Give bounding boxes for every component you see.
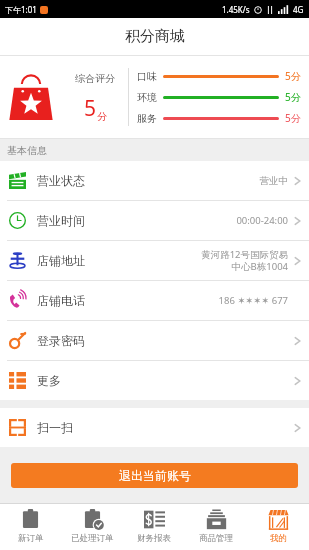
- button[interactable]: 营业状态: [0, 161, 309, 200]
- staticText: 店铺电话: [37, 293, 85, 308]
- button[interactable]: 已处理订单: [61, 504, 123, 550]
- staticText: 营业时间: [37, 213, 85, 228]
- button[interactable]: 财务报表: [123, 504, 185, 550]
- staticText: 基本信息: [7, 144, 47, 157]
- staticText: 下午1:01: [5, 4, 37, 15]
- staticText: 登录密码: [37, 333, 85, 348]
- staticText: 186 ✶✶✶✶ 677: [218, 294, 288, 307]
- staticText: 更多: [37, 373, 61, 388]
- button[interactable]: 营业时间: [0, 201, 309, 240]
- staticText: 营业中: [259, 175, 288, 187]
- staticText: 5: [84, 94, 97, 123]
- staticText: 营业状态: [37, 173, 85, 188]
- staticText: 分: [97, 110, 107, 123]
- button[interactable]: 扫一扫: [0, 408, 309, 447]
- staticText: 店铺地址: [37, 253, 85, 268]
- staticText: 环境: [137, 91, 157, 104]
- button[interactable]: 退出当前账号: [11, 463, 298, 488]
- staticText: 已处理订单: [71, 533, 114, 544]
- staticText: 扫一扫: [37, 420, 73, 435]
- staticText: 5分: [285, 111, 301, 125]
- staticText: 积分商城: [125, 27, 185, 46]
- staticText: 综合评分: [75, 72, 115, 85]
- button[interactable]: 更多: [0, 361, 309, 400]
- button[interactable]: 我的: [247, 504, 309, 550]
- staticText: 退出当前账号: [119, 468, 191, 483]
- staticText: 4G: [293, 4, 304, 15]
- staticText: 00:00-24:00: [236, 214, 288, 227]
- button[interactable]: 店铺地址: [0, 241, 309, 280]
- staticText: 5分: [285, 90, 301, 104]
- staticText: 5分: [285, 69, 301, 83]
- staticText: 财务报表: [137, 533, 171, 544]
- staticText: 1.45K/s: [222, 4, 250, 15]
- staticText: 黄河路12号国际贸易 中心B栋1004: [201, 248, 288, 273]
- button[interactable]: 新订单: [0, 504, 61, 550]
- button[interactable]: 商品管理: [185, 504, 247, 550]
- staticText: 口味: [137, 70, 157, 83]
- staticText: 商品管理: [199, 533, 233, 544]
- button[interactable]: 登录密码: [0, 321, 309, 360]
- button[interactable]: 店铺电话: [0, 281, 309, 320]
- staticText: 新订单: [18, 533, 44, 544]
- staticText: 我的: [270, 533, 287, 544]
- staticText: 服务: [137, 112, 157, 125]
